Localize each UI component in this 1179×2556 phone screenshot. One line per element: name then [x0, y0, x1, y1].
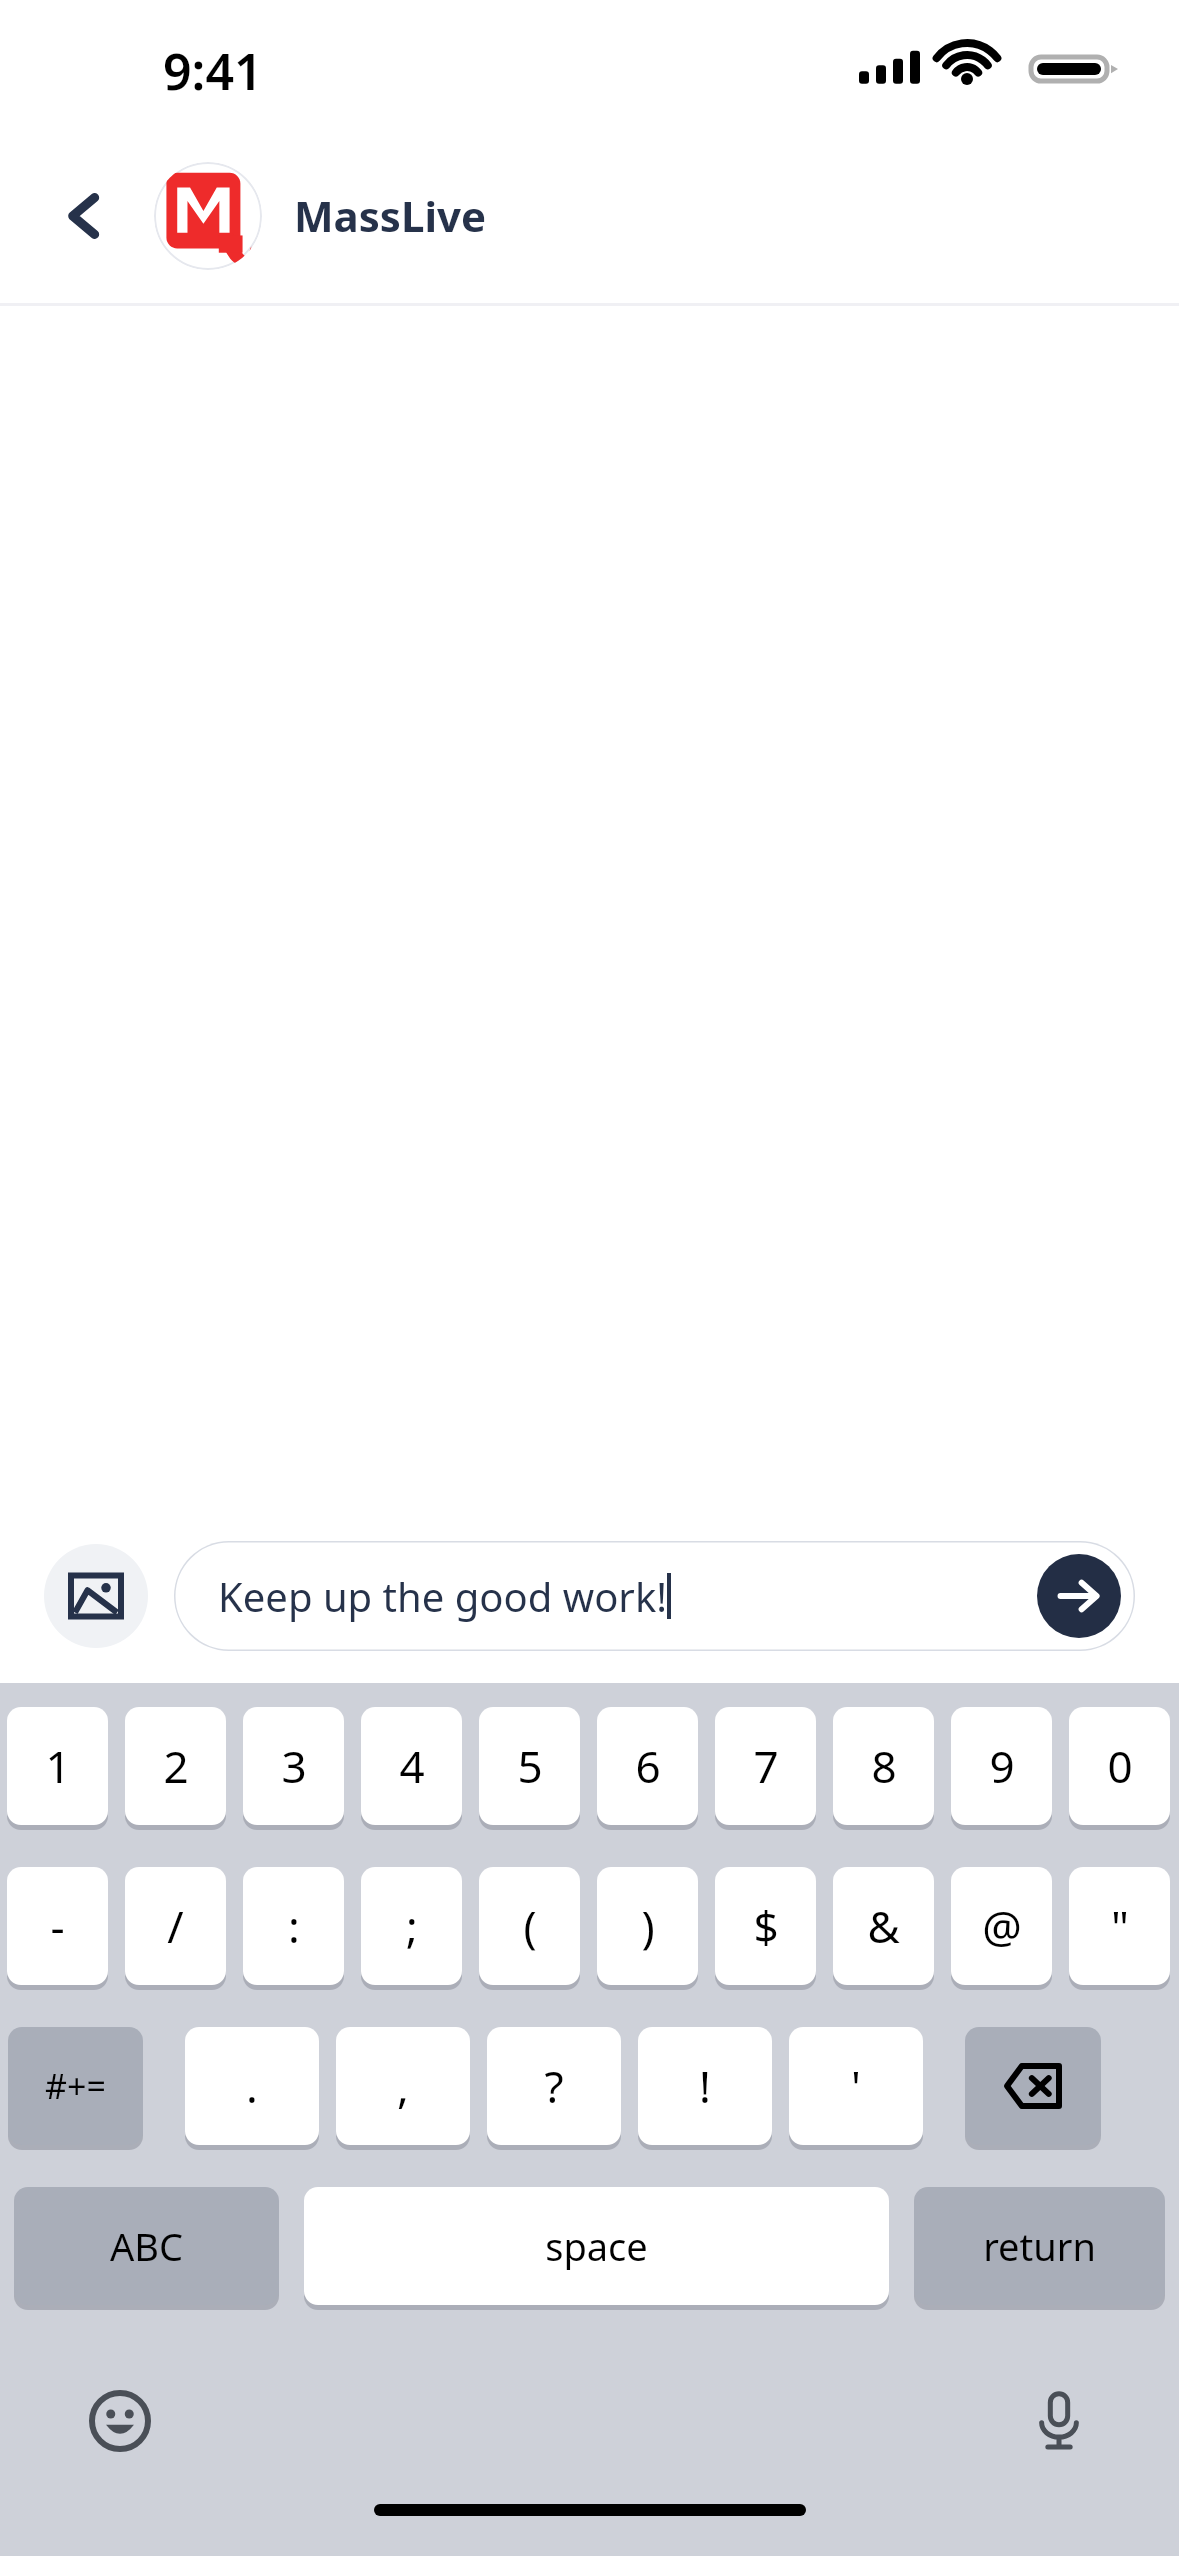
- staticText: 3: [281, 1736, 307, 1796]
- staticText: !: [699, 2056, 711, 2116]
- staticText: ": [1111, 1896, 1129, 1956]
- staticText: 9:41: [163, 37, 263, 105]
- staticText: ,: [397, 2056, 409, 2116]
- staticText: .: [246, 2056, 258, 2116]
- button[interactable]: 4: [361, 1707, 462, 1825]
- button[interactable]: ABC: [14, 2187, 279, 2305]
- button[interactable]: 9: [951, 1707, 1052, 1825]
- button[interactable]: 5: [479, 1707, 580, 1825]
- button[interactable]: 3: [243, 1707, 344, 1825]
- button[interactable]: Dictation: [1019, 2381, 1099, 2461]
- button[interactable]: 8: [833, 1707, 934, 1825]
- staticText: @: [982, 1896, 1022, 1956]
- button[interactable]: 0: [1069, 1707, 1170, 1825]
- staticText: space: [545, 2220, 648, 2272]
- staticText: ;: [406, 1896, 418, 1956]
- button[interactable]: Backspace: [965, 2027, 1101, 2145]
- staticText: 7: [753, 1736, 779, 1796]
- button[interactable]: ': [789, 2027, 923, 2145]
- button[interactable]: !: [638, 2027, 772, 2145]
- button[interactable]: 2: [125, 1707, 226, 1825]
- staticText: 1: [45, 1736, 71, 1796]
- button[interactable]: #+=: [8, 2027, 143, 2145]
- button[interactable]: Keep up the good work!: [174, 1541, 1135, 1651]
- button[interactable]: ): [597, 1867, 698, 1985]
- staticText: 5: [517, 1736, 543, 1796]
- button[interactable]: Add image: [44, 1544, 148, 1648]
- button[interactable]: $: [715, 1867, 816, 1985]
- staticText: #+=: [45, 2063, 106, 2109]
- button[interactable]: .: [185, 2027, 319, 2145]
- button[interactable]: @: [951, 1867, 1052, 1985]
- staticText: $: [753, 1896, 779, 1956]
- staticText: 0: [1107, 1736, 1133, 1796]
- staticText: (: [523, 1896, 537, 1956]
- button[interactable]: /: [125, 1867, 226, 1985]
- staticText: /: [167, 1896, 184, 1956]
- staticText: 4: [399, 1736, 425, 1796]
- button[interactable]: (: [479, 1867, 580, 1985]
- staticText: -: [50, 1896, 65, 1956]
- button[interactable]: space: [304, 2187, 889, 2305]
- staticText: ABC: [110, 2220, 183, 2272]
- button[interactable]: :: [243, 1867, 344, 1985]
- button[interactable]: ;: [361, 1867, 462, 1985]
- staticText: 6: [635, 1736, 661, 1796]
- staticText: Keep up the good work!: [218, 1569, 667, 1623]
- staticText: &: [867, 1896, 900, 1956]
- button[interactable]: return: [914, 2187, 1165, 2305]
- button[interactable]: 7: [715, 1707, 816, 1825]
- button[interactable]: ": [1069, 1867, 1170, 1985]
- staticText: 2: [163, 1736, 189, 1796]
- button[interactable]: ,: [336, 2027, 470, 2145]
- button[interactable]: Back: [40, 171, 130, 261]
- button[interactable]: 1: [7, 1707, 108, 1825]
- staticText: ?: [544, 2056, 564, 2116]
- staticText: ): [641, 1896, 655, 1956]
- button[interactable]: -: [7, 1867, 108, 1985]
- button[interactable]: ?: [487, 2027, 621, 2145]
- button[interactable]: &: [833, 1867, 934, 1985]
- staticText: 8: [871, 1736, 897, 1796]
- button[interactable]: Send: [1037, 1554, 1121, 1638]
- staticText: MassLive: [294, 187, 487, 244]
- button[interactable]: 6: [597, 1707, 698, 1825]
- staticText: :: [288, 1896, 300, 1956]
- staticText: ': [851, 2056, 861, 2116]
- staticText: 9: [989, 1736, 1015, 1796]
- staticText: return: [983, 2220, 1096, 2272]
- button[interactable]: Emoji: [80, 2381, 160, 2461]
